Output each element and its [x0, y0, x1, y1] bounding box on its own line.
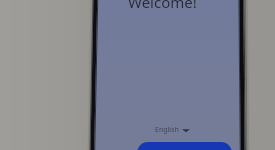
button[interactable]: English: [155, 125, 190, 135]
staticText: English: [155, 125, 179, 135]
button[interactable]: [137, 142, 232, 150]
staticText: Welcome!: [128, 0, 197, 12]
